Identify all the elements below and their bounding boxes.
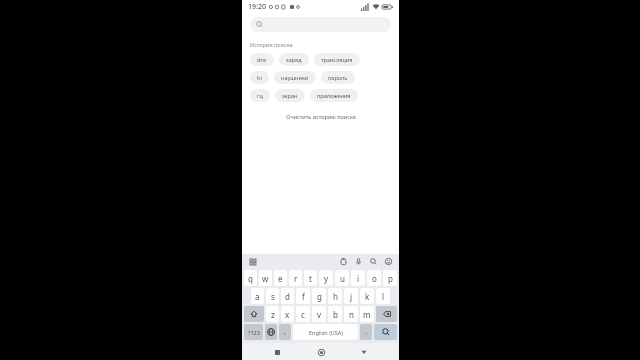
button[interactable]: k <box>360 288 374 304</box>
staticText: d <box>285 291 290 302</box>
button[interactable]: гц <box>250 89 270 102</box>
button[interactable]: t <box>304 270 317 286</box>
button[interactable]: Очистить историю поиска <box>282 111 360 122</box>
button[interactable]: c <box>296 306 310 322</box>
button[interactable]: Home <box>313 344 329 360</box>
other: Search <box>256 21 263 28</box>
button[interactable]: Emoji <box>384 257 393 266</box>
staticText: h <box>333 291 338 302</box>
staticText: ?123 <box>248 329 260 336</box>
button[interactable]: Change language <box>265 324 277 340</box>
staticText: w <box>262 273 269 284</box>
staticText: трансляция <box>321 56 353 63</box>
button[interactable]: приложения <box>310 89 358 102</box>
staticText: гц <box>257 92 263 99</box>
staticText: пароль <box>328 74 348 81</box>
button[interactable]: экран <box>275 89 305 102</box>
button[interactable]: f <box>296 288 310 304</box>
staticText: i <box>357 273 360 284</box>
button[interactable]: hi <box>250 71 269 84</box>
button[interactable]: b <box>328 306 342 322</box>
button[interactable]: Back <box>356 344 372 360</box>
staticText: заряд <box>286 56 302 63</box>
button[interactable]: dns <box>250 53 274 66</box>
staticText: t <box>309 273 312 284</box>
staticText: q <box>248 273 253 284</box>
staticText: y <box>324 273 329 284</box>
staticText: приложения <box>317 92 351 99</box>
button[interactable]: Recent apps <box>269 344 285 360</box>
staticText: hi <box>257 74 262 81</box>
staticText: , <box>284 327 286 337</box>
staticText: наушники <box>281 74 309 81</box>
staticText: e <box>278 273 283 284</box>
staticText: a <box>255 291 260 302</box>
staticText: c <box>301 309 305 320</box>
button[interactable]: Search <box>250 17 391 32</box>
staticText: Очистить историю поиска <box>286 113 356 120</box>
staticText: История поиска <box>250 41 293 48</box>
button[interactable]: z <box>266 306 279 322</box>
button[interactable]: ?123 <box>244 324 263 340</box>
button[interactable]: p <box>383 270 397 286</box>
button[interactable]: , <box>279 324 291 340</box>
staticText: g <box>317 291 322 302</box>
staticText: m <box>363 309 371 320</box>
button[interactable]: n <box>344 306 358 322</box>
button[interactable]: u <box>335 270 349 286</box>
staticText: r <box>294 273 298 284</box>
button[interactable]: l <box>376 288 390 304</box>
staticText: l <box>382 291 385 302</box>
staticText: b <box>333 309 338 320</box>
button[interactable]: Toolbar menu <box>248 257 257 266</box>
button[interactable]: Voice input <box>354 257 363 266</box>
staticText: dns <box>257 56 267 63</box>
button[interactable]: q <box>244 270 257 286</box>
staticText: экран <box>282 92 298 99</box>
button[interactable]: a <box>251 288 264 304</box>
staticText: z <box>271 309 275 320</box>
staticText: k <box>365 291 370 302</box>
button[interactable]: English (USA) <box>293 324 358 340</box>
button[interactable]: h <box>328 288 342 304</box>
button[interactable]: наушники <box>274 71 316 84</box>
staticText: . <box>365 327 367 337</box>
button[interactable]: Search <box>374 324 397 340</box>
button[interactable]: v <box>312 306 326 322</box>
staticText: u <box>340 273 345 284</box>
staticText: 19:20 <box>248 2 266 12</box>
button[interactable]: d <box>281 288 294 304</box>
staticText: v <box>317 309 322 320</box>
staticText: j <box>350 291 353 302</box>
button[interactable]: Backspace <box>376 306 397 322</box>
staticText: English (USA) <box>309 329 343 336</box>
button[interactable]: Shift <box>244 306 264 322</box>
staticText: p <box>388 273 393 284</box>
button[interactable]: w <box>259 270 272 286</box>
staticText: f <box>302 291 305 302</box>
button[interactable]: заряд <box>279 53 309 66</box>
button[interactable]: g <box>312 288 326 304</box>
button[interactable]: j <box>344 288 358 304</box>
button[interactable]: e <box>274 270 287 286</box>
button[interactable]: трансляция <box>314 53 360 66</box>
button[interactable]: r <box>289 270 302 286</box>
staticText: s <box>271 291 275 302</box>
button[interactable]: y <box>319 270 333 286</box>
staticText: n <box>349 309 354 320</box>
button[interactable]: . <box>360 324 372 340</box>
button[interactable]: Clipboard <box>339 257 348 266</box>
button[interactable]: Search <box>369 257 378 266</box>
button[interactable]: s <box>266 288 279 304</box>
button[interactable]: m <box>360 306 374 322</box>
button[interactable]: x <box>281 306 294 322</box>
staticText: o <box>372 273 377 284</box>
button[interactable]: i <box>351 270 365 286</box>
button[interactable]: o <box>367 270 381 286</box>
staticText: x <box>285 309 290 320</box>
button[interactable]: пароль <box>321 71 355 84</box>
